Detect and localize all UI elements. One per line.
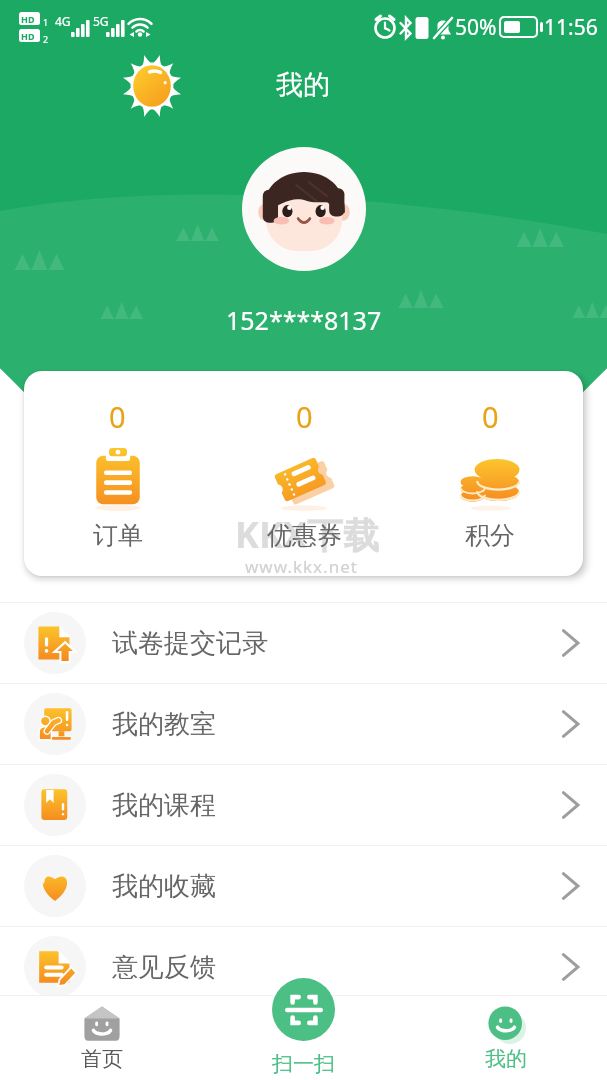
staticText: 我的 — [485, 1046, 527, 1072]
staticText: 0 — [482, 397, 499, 436]
button[interactable]: 意见反馈 — [0, 927, 607, 1007]
staticText: HD — [21, 30, 35, 42]
staticText: 5G — [93, 13, 109, 29]
staticText: 0 — [296, 397, 313, 436]
staticText: 50% — [455, 13, 497, 42]
staticText: 试卷提交记录 — [112, 627, 268, 660]
staticText: 订单 — [93, 520, 143, 551]
button[interactable]: 我的收藏 — [0, 846, 607, 926]
staticText: 我的收藏 — [112, 870, 216, 903]
button[interactable]: 0 — [211, 371, 397, 576]
staticText: 我的 — [276, 68, 330, 102]
staticText: 2 — [43, 33, 49, 45]
button[interactable]: 首页 — [0, 995, 203, 1072]
staticText: HD — [21, 13, 35, 25]
staticText: 11:56 — [544, 13, 598, 42]
staticText: 0 — [109, 397, 126, 436]
staticText: www.kkx.net — [245, 555, 358, 576]
button[interactable]: 0 — [24, 371, 211, 576]
button[interactable]: 我的 — [405, 995, 607, 1072]
button[interactable]: 我的课程 — [0, 765, 607, 845]
staticText: 4G — [55, 13, 71, 29]
staticText: 扫一扫 — [272, 1051, 335, 1077]
staticText: 首页 — [81, 1046, 123, 1072]
staticText: 优惠券 — [267, 520, 342, 551]
staticText: 意见反馈 — [112, 951, 216, 984]
staticText: 1 — [43, 16, 49, 28]
staticText: 我的教室 — [112, 708, 216, 741]
staticText: 我的课程 — [112, 789, 216, 822]
button[interactable]: 0 — [397, 371, 583, 576]
staticText: 积分 — [465, 520, 515, 551]
button[interactable]: 试卷提交记录 — [0, 603, 607, 683]
staticText: KKX下载 — [235, 510, 379, 559]
button[interactable]: 我的教室 — [0, 684, 607, 764]
button[interactable]: 扫一扫 — [272, 978, 335, 1041]
staticText: 152****8137 — [226, 303, 382, 337]
